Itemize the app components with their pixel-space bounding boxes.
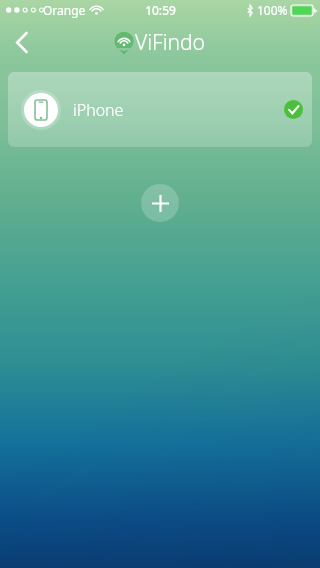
button[interactable]: Add device	[141, 184, 179, 222]
staticText: 10:59	[145, 2, 176, 18]
staticText: iPhone	[73, 99, 124, 121]
staticText: ViFindo	[135, 28, 206, 57]
button[interactable]: Back	[0, 20, 44, 64]
staticText: Orange	[43, 2, 86, 18]
staticText: 100%	[257, 2, 288, 18]
button[interactable]: iPhone	[8, 72, 312, 147]
other: Connected	[284, 100, 303, 119]
